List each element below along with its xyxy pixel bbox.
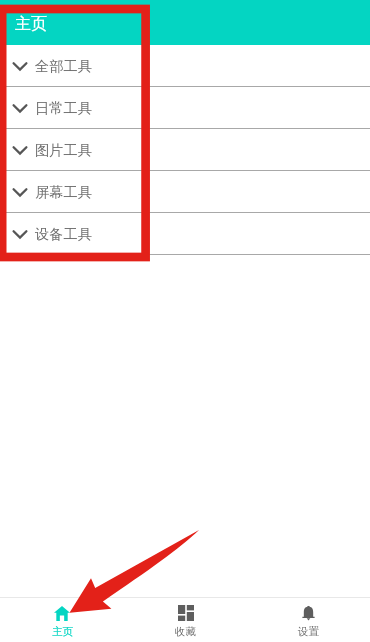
button[interactable]: 收藏 [124, 598, 247, 642]
staticText: 日常工具 [35, 99, 92, 117]
other: 设置 [302, 605, 315, 621]
button[interactable]: 全部工具 [0, 45, 370, 87]
staticText: 收藏 [175, 625, 196, 638]
other: 主页 [54, 606, 70, 621]
staticText: 屏幕工具 [35, 183, 92, 201]
button[interactable]: 日常工具 [0, 87, 370, 129]
button[interactable]: 设备工具 [0, 213, 370, 255]
button[interactable]: 图片工具 [0, 129, 370, 171]
staticText: 主页 [15, 14, 47, 34]
staticText: 主页 [52, 625, 73, 638]
staticText: 设备工具 [35, 225, 92, 243]
button[interactable]: 主页 [0, 598, 124, 642]
staticText: 设置 [298, 625, 319, 638]
staticText: 全部工具 [35, 57, 92, 75]
button[interactable]: 屏幕工具 [0, 171, 370, 213]
staticText: 图片工具 [35, 141, 92, 159]
button[interactable]: 设置 [247, 598, 370, 642]
other: 收藏 [178, 605, 194, 621]
